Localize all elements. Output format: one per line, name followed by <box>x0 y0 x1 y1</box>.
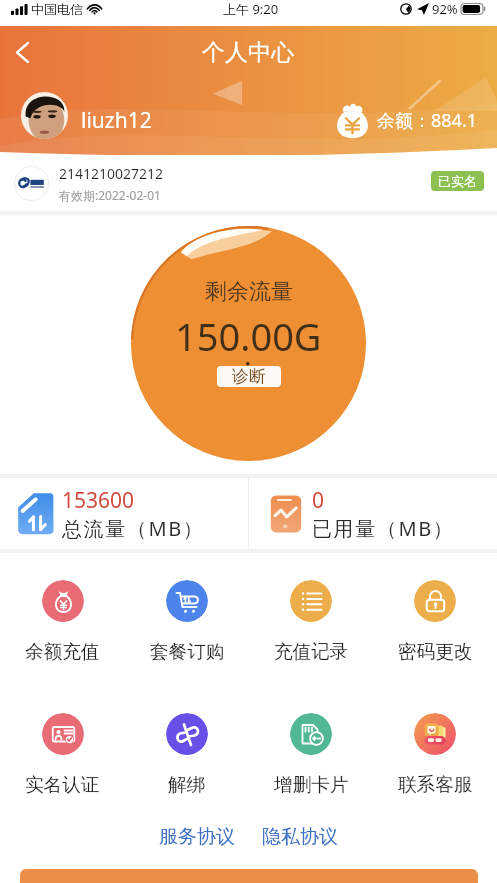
button[interactable]: 诊断 <box>217 366 281 387</box>
staticText: 诊断 <box>232 366 266 387</box>
button[interactable]: Back <box>0 26 44 78</box>
staticText: 总流量（MB） <box>62 515 205 542</box>
staticText: 实名认证 <box>25 773 100 796</box>
staticText: 92% <box>432 0 458 18</box>
staticText: 余额充值 <box>25 640 100 663</box>
staticText: 已用量（MB） <box>312 515 455 542</box>
button[interactable]: 套餐订购 <box>125 580 249 663</box>
staticText: 150.00G <box>175 310 322 362</box>
button[interactable]: 解绑 <box>125 713 249 796</box>
staticText: 剩余流量 <box>205 278 293 306</box>
staticText: 联系客服 <box>398 773 473 796</box>
button[interactable]: 联系客服 <box>373 713 497 796</box>
button[interactable]: 153600 <box>0 478 248 549</box>
button[interactable]: 0 <box>249 478 497 549</box>
button[interactable]: 实名认证 <box>0 713 125 796</box>
staticText: 2141210027212 <box>59 164 164 183</box>
staticText: 隐私协议 <box>262 825 338 849</box>
staticText: 153600 <box>62 486 135 515</box>
staticText: 解绑 <box>168 773 206 796</box>
staticText: 0 <box>312 486 325 515</box>
staticText: 服务协议 <box>159 825 235 849</box>
button[interactable]: 已实名 <box>431 171 484 191</box>
staticText: 余额：884.1 <box>377 108 478 133</box>
staticText: 上午 9:20 <box>223 0 279 18</box>
staticText: 增删卡片 <box>274 773 349 796</box>
staticText: 套餐订购 <box>150 640 225 663</box>
staticText: 有效期:2022-02-01 <box>59 187 161 203</box>
button[interactable]: 增删卡片 <box>249 713 373 796</box>
staticText: 个人中心 <box>202 38 294 67</box>
button[interactable]: 隐私协议 <box>253 821 347 853</box>
staticText: 密码更改 <box>398 640 473 663</box>
staticText: 已实名 <box>438 173 477 189</box>
staticText: 充值记录 <box>274 640 349 663</box>
staticText: liuzh12 <box>81 106 152 135</box>
button[interactable]: Balance <box>333 102 478 139</box>
staticText: 中国电信 <box>31 1 83 17</box>
button[interactable]: 2141210027212 <box>0 155 497 211</box>
button[interactable]: Action <box>20 869 478 883</box>
button[interactable]: 余额充值 <box>0 580 125 663</box>
button[interactable]: 服务协议 <box>150 821 244 853</box>
button[interactable]: 密码更改 <box>373 580 497 663</box>
button[interactable]: 充值记录 <box>249 580 373 663</box>
button[interactable]: Profile <box>21 92 152 139</box>
